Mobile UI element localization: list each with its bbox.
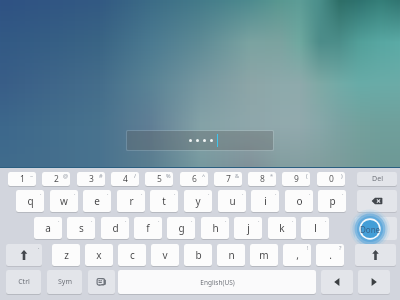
button[interactable]: Sym xyxy=(47,270,82,294)
button[interactable]: 3 xyxy=(77,172,105,186)
staticText: n xyxy=(228,248,235,262)
staticText: 4 xyxy=(123,173,128,185)
staticText: i xyxy=(264,194,267,208)
button[interactable]: 9 xyxy=(282,172,310,186)
staticText: · xyxy=(191,217,193,224)
button[interactable]: x xyxy=(85,244,113,266)
staticText: ^ xyxy=(202,172,206,179)
button[interactable]: Del xyxy=(357,172,397,186)
button[interactable]: p xyxy=(318,190,346,212)
staticText: Ctrl xyxy=(18,277,30,287)
button[interactable]: i xyxy=(251,190,279,212)
staticText: w xyxy=(60,194,68,208)
staticText: % xyxy=(166,172,171,179)
staticText: · xyxy=(225,217,227,224)
button[interactable]: a xyxy=(34,217,62,239)
button[interactable]: l xyxy=(301,217,329,239)
staticText: # xyxy=(99,172,103,179)
staticText: , xyxy=(296,248,299,262)
button[interactable]: s xyxy=(67,217,95,239)
button[interactable]: t xyxy=(150,190,178,212)
button[interactable]: Move cursor left xyxy=(321,270,353,294)
button[interactable]: Move cursor right xyxy=(358,270,390,294)
staticText: s xyxy=(79,221,84,235)
button[interactable]: d xyxy=(101,217,129,239)
button[interactable]: 1 xyxy=(8,172,36,186)
staticText: 1 xyxy=(20,173,25,185)
staticText: · xyxy=(40,190,42,197)
button[interactable]: n xyxy=(217,244,245,266)
button[interactable]: b xyxy=(184,244,212,266)
staticText: · xyxy=(292,217,294,224)
button[interactable]: 4 xyxy=(111,172,139,186)
button[interactable]: m xyxy=(250,244,278,266)
staticText: m xyxy=(259,248,269,262)
button[interactable]: . xyxy=(316,244,344,266)
staticText: z xyxy=(64,248,69,262)
staticText: ! xyxy=(307,244,309,251)
staticText: · xyxy=(158,217,160,224)
staticText: ~ xyxy=(30,172,34,179)
button[interactable]: Shift xyxy=(6,244,42,266)
staticText: · xyxy=(74,190,76,197)
staticText: · xyxy=(309,190,311,197)
button[interactable]: o xyxy=(285,190,313,212)
staticText: · xyxy=(58,217,60,224)
button[interactable]: Keyboard settings xyxy=(88,270,115,294)
button[interactable]: g xyxy=(167,217,195,239)
button[interactable]: v xyxy=(151,244,179,266)
staticText: j xyxy=(247,221,250,235)
staticText: & xyxy=(235,172,240,179)
button[interactable]: 6 xyxy=(180,172,208,186)
staticText: / xyxy=(134,172,137,179)
staticText: · xyxy=(242,190,244,197)
staticText: @ xyxy=(63,172,68,179)
staticText: · xyxy=(208,190,210,197)
staticText: u xyxy=(229,194,236,208)
staticText: 7 xyxy=(226,173,231,185)
button[interactable]: q xyxy=(16,190,44,212)
button[interactable]: j xyxy=(234,217,262,239)
button[interactable]: r xyxy=(117,190,145,212)
staticText: l xyxy=(314,221,317,235)
staticText: v xyxy=(162,248,168,262)
button[interactable]: k xyxy=(268,217,296,239)
staticText: · xyxy=(342,190,344,197)
staticText: t xyxy=(162,194,166,208)
staticText: h xyxy=(212,221,219,235)
button[interactable]: u xyxy=(218,190,246,212)
staticText: 0 xyxy=(329,173,334,185)
button[interactable]: English(US) xyxy=(118,270,316,294)
button[interactable]: 8 xyxy=(248,172,276,186)
staticText: 2 xyxy=(54,173,59,185)
button[interactable]: 0 xyxy=(317,172,345,186)
button[interactable]: h xyxy=(201,217,229,239)
staticText: Del xyxy=(372,174,383,184)
staticText: c xyxy=(130,248,135,262)
button[interactable]: 5 xyxy=(145,172,173,186)
staticText: a xyxy=(45,221,51,235)
staticText: e xyxy=(94,194,100,208)
button[interactable]: z xyxy=(52,244,80,266)
button[interactable]: w xyxy=(50,190,78,212)
button[interactable]: e xyxy=(83,190,111,212)
button[interactable]: , xyxy=(283,244,311,266)
staticText: · xyxy=(174,190,176,197)
staticText: · xyxy=(141,190,143,197)
button[interactable]: c xyxy=(118,244,146,266)
staticText: English(US) xyxy=(200,278,235,287)
button[interactable]: f xyxy=(134,217,162,239)
button[interactable]: 7 xyxy=(214,172,242,186)
button[interactable]: Password field xyxy=(126,130,274,151)
button[interactable]: Ctrl xyxy=(6,270,41,294)
button[interactable]: 2 xyxy=(42,172,70,186)
button[interactable]: Done xyxy=(355,217,397,240)
staticText: k xyxy=(279,221,285,235)
staticText: b xyxy=(195,248,202,262)
button[interactable]: Shift xyxy=(355,244,396,266)
button[interactable]: y xyxy=(184,190,212,212)
staticText: . xyxy=(329,248,332,262)
staticText: 8 xyxy=(260,173,265,185)
staticText: x xyxy=(96,248,102,262)
button[interactable]: Backspace xyxy=(357,190,397,212)
